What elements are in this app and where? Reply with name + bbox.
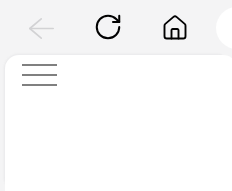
button[interactable]: Menu (15, 55, 63, 98)
button[interactable]: Address bar (216, 7, 232, 49)
button[interactable]: Home (151, 4, 199, 52)
button[interactable]: Back (17, 4, 65, 52)
button[interactable]: Reload (84, 3, 132, 51)
